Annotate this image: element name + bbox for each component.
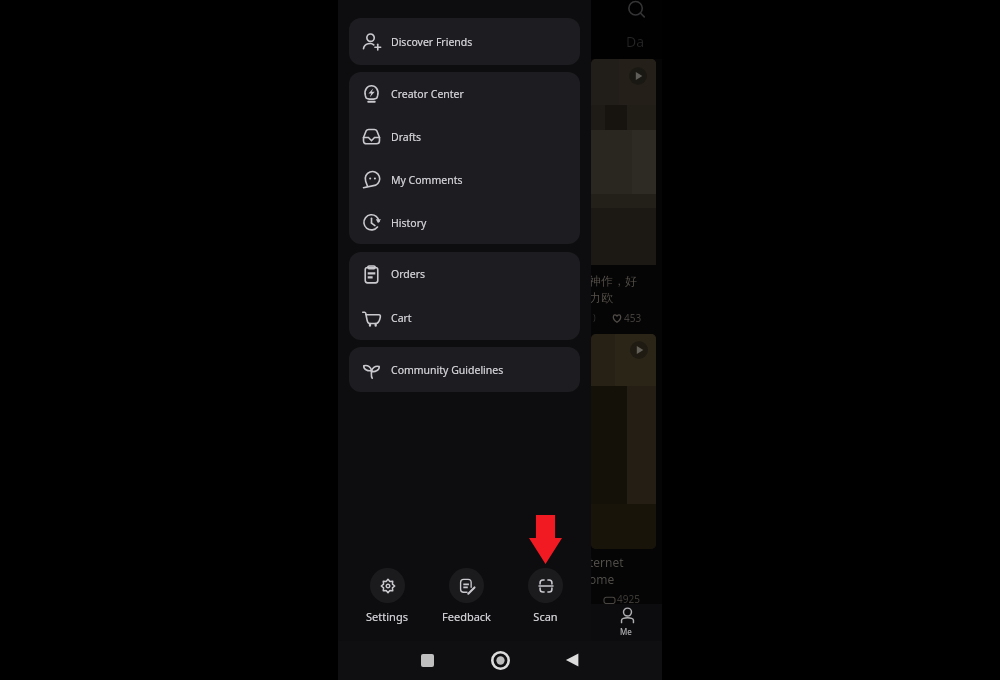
- button[interactable]: Creator Center: [349, 72, 580, 115]
- button[interactable]: Orders: [349, 252, 580, 296]
- button[interactable]: Recents: [412, 645, 442, 675]
- staticText: Orders: [391, 267, 426, 281]
- button[interactable]: Home: [485, 645, 515, 675]
- button[interactable]: Search: [626, 0, 648, 22]
- staticText: Settings: [366, 609, 408, 624]
- staticText: Discover Friends: [391, 35, 473, 49]
- staticText: Community Guidelines: [391, 363, 504, 377]
- staticText: ): [593, 311, 596, 323]
- button[interactable]: Feedback: [431, 568, 501, 624]
- staticText: Cart: [391, 311, 412, 325]
- button[interactable]: Play video: [591, 334, 656, 549]
- staticText: Da: [626, 32, 645, 51]
- staticText: Me: [620, 626, 632, 637]
- button[interactable]: Discover Friends: [349, 18, 580, 65]
- button[interactable]: Play video: [591, 59, 656, 265]
- button[interactable]: Settings: [352, 568, 422, 624]
- button[interactable]: Community Guidelines: [349, 347, 580, 392]
- button[interactable]: Scan: [510, 568, 580, 624]
- staticText: 453: [624, 311, 642, 325]
- staticText: Feedback: [442, 609, 491, 624]
- staticText: 力欧: [589, 290, 613, 305]
- staticText: Scan: [533, 609, 558, 624]
- staticText: 4925: [617, 592, 640, 606]
- button[interactable]: Cart: [349, 296, 580, 340]
- staticText: Drafts: [391, 130, 422, 144]
- staticText: ome: [589, 571, 615, 587]
- staticText: ternet: [589, 554, 624, 570]
- button[interactable]: [591, 604, 662, 641]
- staticText: My Comments: [391, 173, 463, 187]
- button[interactable]: History: [349, 201, 580, 244]
- button[interactable]: Drafts: [349, 115, 580, 158]
- staticText: Creator Center: [391, 87, 464, 101]
- button[interactable]: My Comments: [349, 158, 580, 201]
- staticText: History: [391, 216, 427, 230]
- button[interactable]: Back: [557, 645, 587, 675]
- staticText: 神作，好: [589, 273, 637, 288]
